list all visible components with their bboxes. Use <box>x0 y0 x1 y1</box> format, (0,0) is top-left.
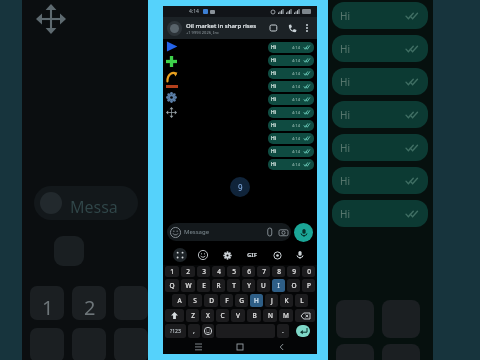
button[interactable]: Hi <box>268 81 314 92</box>
staticText: Z <box>191 311 195 320</box>
button[interactable]: Hi <box>268 68 314 79</box>
staticText: A <box>177 296 182 305</box>
button[interactable]: A <box>172 294 186 307</box>
button[interactable]: Hi <box>268 133 314 144</box>
staticText: Q <box>169 281 175 290</box>
button[interactable]: 6 <box>242 266 255 277</box>
button[interactable]: Hi <box>268 146 314 157</box>
button[interactable]: X <box>201 309 214 322</box>
button[interactable]: Attach <box>265 227 275 237</box>
staticText: Y <box>247 281 251 290</box>
button[interactable]: B <box>247 309 261 322</box>
staticText: 4:14 <box>292 45 300 50</box>
button[interactable]: V <box>231 309 245 322</box>
button[interactable]: Back <box>275 340 289 354</box>
button[interactable]: Hi <box>268 42 314 53</box>
staticText: 1 <box>170 267 174 276</box>
button[interactable]: C <box>216 309 229 322</box>
button[interactable]: R <box>212 279 225 292</box>
staticText: N <box>268 311 273 320</box>
button[interactable]: H <box>250 294 263 307</box>
button[interactable]: Hi <box>268 55 314 66</box>
button[interactable]: M <box>279 309 293 322</box>
button[interactable]: Camera <box>278 227 288 237</box>
button[interactable]: S <box>188 294 202 307</box>
button[interactable]: Q <box>165 279 179 292</box>
button[interactable]: 9 <box>287 266 300 277</box>
button[interactable]: Hi <box>268 107 314 118</box>
staticText: 4:14 <box>292 97 300 102</box>
button[interactable]: More options <box>301 22 313 34</box>
button[interactable]: Home <box>233 340 247 354</box>
button[interactable]: 0 <box>302 266 315 277</box>
button[interactable]: Voice input <box>293 248 307 262</box>
staticText: 4:14 <box>292 123 300 128</box>
staticText: Hi <box>271 83 276 90</box>
button[interactable]: Hi <box>268 159 314 170</box>
button[interactable]: Voice message <box>294 223 313 242</box>
button[interactable]: K <box>280 294 293 307</box>
button[interactable]: 3 <box>197 266 210 277</box>
staticText: Hi <box>340 9 350 23</box>
button[interactable]: T <box>227 279 240 292</box>
staticText: 9 <box>292 267 296 276</box>
button[interactable]: Z <box>186 309 199 322</box>
button[interactable]: I <box>272 279 285 292</box>
staticText: T <box>232 281 236 290</box>
button[interactable]: 4 <box>212 266 225 277</box>
button[interactable]: 2 <box>181 266 195 277</box>
staticText: 4:14 <box>292 136 300 141</box>
button[interactable]: E <box>197 279 210 292</box>
button[interactable]: W <box>181 279 195 292</box>
button[interactable]: Message <box>167 223 291 241</box>
button[interactable]: Y <box>242 279 255 292</box>
button[interactable]: Stickers <box>270 248 284 262</box>
button[interactable]: G <box>235 294 248 307</box>
button[interactable]: Apps <box>173 248 187 262</box>
button[interactable]: Symbols <box>165 324 186 338</box>
button[interactable]: D <box>204 294 218 307</box>
staticText: Hi <box>340 42 350 56</box>
button[interactable]: Keyboard settings <box>220 248 234 262</box>
button[interactable]: 7 <box>257 266 270 277</box>
staticText: 8 <box>277 267 281 276</box>
button[interactable]: 1 <box>165 266 179 277</box>
button[interactable]: L <box>295 294 308 307</box>
button[interactable]: 8 <box>272 266 285 277</box>
staticText: 4:14 <box>292 110 300 115</box>
staticText: 4:14 <box>292 71 300 76</box>
button[interactable]: Enter <box>296 325 310 337</box>
button[interactable]: O <box>287 279 300 292</box>
staticText: Hi <box>340 174 350 188</box>
staticText: Hi <box>271 70 276 77</box>
button[interactable]: N <box>263 309 277 322</box>
button[interactable]: Settings <box>166 92 177 103</box>
button[interactable]: U <box>257 279 270 292</box>
button[interactable]: Video call <box>268 21 282 35</box>
button[interactable]: J <box>265 294 278 307</box>
button[interactable]: Period <box>277 324 289 338</box>
staticText: Messa <box>70 196 118 218</box>
staticText: . <box>282 326 284 336</box>
staticText: H <box>254 296 259 305</box>
staticText: 5 <box>232 267 236 276</box>
button[interactable]: Hi <box>268 94 314 105</box>
staticText: 2 <box>84 294 96 321</box>
button[interactable]: Comma <box>188 324 200 338</box>
button[interactable]: F <box>220 294 233 307</box>
button[interactable]: Call <box>285 21 299 35</box>
button[interactable]: Recents <box>191 340 205 354</box>
button[interactable]: GIF <box>244 247 260 263</box>
button[interactable]: Emoji <box>202 324 214 338</box>
button[interactable]: Backspace <box>295 309 315 322</box>
button[interactable]: Emoji <box>196 248 210 262</box>
staticText: E <box>202 281 206 290</box>
button[interactable]: 5 <box>227 266 240 277</box>
button[interactable]: Shift <box>165 309 184 322</box>
button[interactable]: P <box>302 279 315 292</box>
staticText: ?123 <box>170 328 181 335</box>
staticText: Hi <box>271 148 276 155</box>
staticText: +1 9993 2026, Inc <box>186 30 219 35</box>
button[interactable]: Hi <box>268 120 314 131</box>
